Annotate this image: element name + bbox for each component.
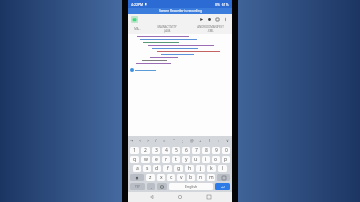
button[interactable]: l bbox=[218, 165, 227, 172]
button[interactable]: z bbox=[146, 174, 155, 181]
staticText: y bbox=[185, 156, 188, 163]
button[interactable]: 3 bbox=[152, 147, 160, 154]
button[interactable]: h bbox=[185, 165, 194, 172]
button[interactable]: u bbox=[192, 156, 200, 163]
staticText: b bbox=[189, 174, 193, 181]
button[interactable]: MAINACTIVITY .JAVA bbox=[146, 24, 188, 34]
button[interactable]: 1 bbox=[130, 147, 139, 154]
button[interactable]: MA... bbox=[128, 24, 146, 34]
button[interactable]: " bbox=[169, 136, 178, 145]
button[interactable]: = bbox=[160, 136, 169, 145]
staticText: d bbox=[155, 165, 159, 172]
button[interactable]: i bbox=[202, 156, 210, 163]
button[interactable]: + bbox=[196, 136, 205, 145]
button[interactable]: f bbox=[163, 165, 172, 172]
staticText: !1? bbox=[135, 184, 140, 189]
button[interactable]: 6 bbox=[182, 147, 190, 154]
button[interactable]: → bbox=[128, 136, 136, 145]
staticText: 6 bbox=[185, 147, 188, 154]
button[interactable]: c bbox=[167, 174, 175, 181]
button[interactable]: p bbox=[222, 156, 230, 163]
button[interactable]: Shift bbox=[130, 174, 144, 181]
button[interactable]: > bbox=[144, 136, 152, 145]
button[interactable]: , bbox=[147, 183, 155, 190]
button[interactable]: n bbox=[197, 174, 205, 181]
staticText: z bbox=[149, 174, 152, 181]
staticText: t bbox=[175, 156, 177, 163]
staticText: j bbox=[200, 165, 202, 172]
button[interactable]: ∨ bbox=[223, 136, 232, 145]
button[interactable]: d bbox=[153, 165, 161, 172]
staticText: x bbox=[160, 174, 163, 181]
button[interactable]: 5 bbox=[172, 147, 180, 154]
button[interactable]: Change language bbox=[157, 183, 167, 190]
button[interactable]: 0 bbox=[222, 147, 230, 154]
staticText: o bbox=[214, 156, 218, 163]
button[interactable]: ; bbox=[178, 136, 187, 145]
button[interactable]: More options bbox=[221, 15, 229, 23]
button[interactable]: 8 bbox=[202, 147, 210, 154]
staticText: n bbox=[199, 174, 203, 181]
button[interactable]: Recents bbox=[204, 192, 214, 202]
button[interactable]: o bbox=[212, 156, 220, 163]
button[interactable]: k bbox=[207, 165, 216, 172]
button[interactable]: Device bbox=[213, 15, 221, 23]
staticText: ; bbox=[182, 138, 184, 143]
button[interactable]: w bbox=[141, 156, 150, 163]
staticText: a bbox=[136, 165, 139, 172]
button[interactable]: x bbox=[157, 174, 165, 181]
button[interactable]: ( bbox=[205, 136, 214, 145]
staticText: v bbox=[180, 174, 183, 181]
staticText: ( bbox=[209, 138, 211, 143]
staticText: , bbox=[151, 184, 152, 189]
button[interactable]: English bbox=[169, 183, 213, 190]
button[interactable]: m bbox=[207, 174, 215, 181]
button[interactable]: < bbox=[136, 136, 144, 145]
button[interactable]: g bbox=[174, 165, 183, 172]
button[interactable]: Enter bbox=[215, 183, 230, 190]
button[interactable]: 4 bbox=[162, 147, 170, 154]
button[interactable]: !1? bbox=[130, 183, 145, 190]
button[interactable]: ANDROIDMANIFEST .XML bbox=[188, 24, 232, 34]
staticText: p bbox=[224, 156, 228, 163]
staticText: h bbox=[188, 165, 192, 172]
button[interactable]: a bbox=[133, 165, 141, 172]
button[interactable]: j bbox=[196, 165, 205, 172]
staticText: MAINACTIVITY .JAVA bbox=[157, 25, 177, 33]
staticText: 2 bbox=[144, 147, 147, 154]
button[interactable]: t bbox=[172, 156, 180, 163]
staticText: / bbox=[155, 138, 157, 143]
button[interactable]: : bbox=[214, 136, 223, 145]
button[interactable]: Screen recorder notification bbox=[128, 8, 232, 14]
staticText: r bbox=[165, 156, 168, 163]
staticText: " bbox=[173, 138, 175, 143]
button[interactable]: Run bbox=[197, 15, 205, 23]
staticText: k bbox=[210, 165, 213, 172]
button[interactable]: b bbox=[187, 174, 195, 181]
staticText: g bbox=[177, 165, 181, 172]
button[interactable]: 2 bbox=[141, 147, 150, 154]
button[interactable]: Home bbox=[175, 192, 185, 202]
staticText: ANDROIDMANIFEST .XML bbox=[197, 25, 224, 33]
button[interactable]: q bbox=[130, 156, 139, 163]
staticText: ∨ bbox=[226, 138, 229, 143]
button[interactable]: Debug bbox=[205, 15, 213, 23]
button[interactable]: s bbox=[143, 165, 151, 172]
button[interactable]: v bbox=[177, 174, 185, 181]
staticText: Screen Recorder is recording bbox=[159, 9, 202, 13]
staticText: @ bbox=[190, 138, 194, 143]
staticText: : bbox=[218, 138, 220, 143]
staticText: q bbox=[133, 156, 137, 163]
button[interactable]: Backspace bbox=[217, 174, 230, 181]
button[interactable]: y bbox=[182, 156, 190, 163]
button[interactable]: Back bbox=[147, 192, 157, 202]
button[interactable]: 7 bbox=[192, 147, 200, 154]
button[interactable]: e bbox=[152, 156, 160, 163]
button[interactable]: r bbox=[162, 156, 170, 163]
staticText: 9 bbox=[215, 147, 218, 154]
button[interactable]: / bbox=[152, 136, 160, 145]
staticText: 4 bbox=[165, 147, 168, 154]
button[interactable]: @ bbox=[187, 136, 196, 145]
button[interactable]: App icon bbox=[131, 16, 138, 23]
button[interactable]: 9 bbox=[212, 147, 220, 154]
